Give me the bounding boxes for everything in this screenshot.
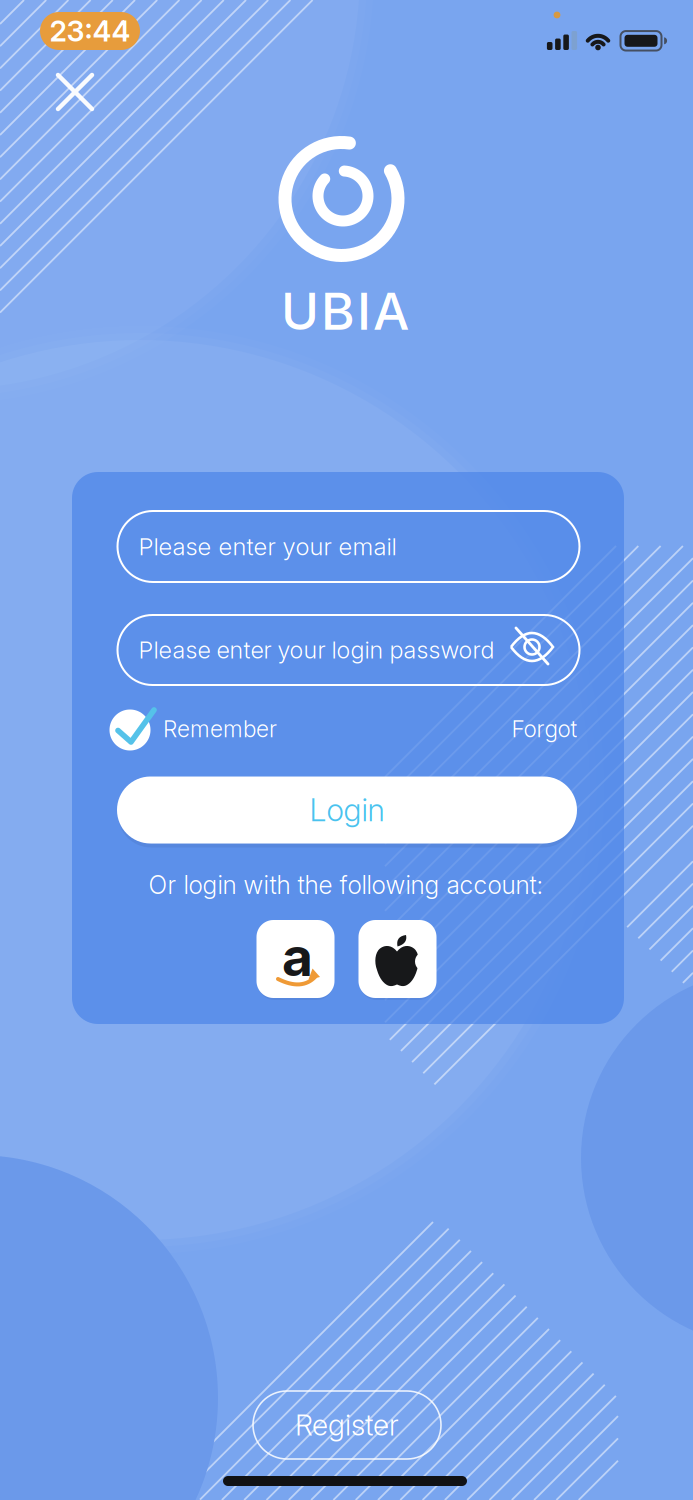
staticText: 23:44 [49, 14, 130, 48]
button[interactable]: Login [117, 776, 577, 843]
staticText: A [373, 280, 409, 342]
button[interactable]: Remember [109, 705, 277, 753]
button[interactable]: Please enter your login password [117, 615, 579, 685]
staticText: Or login with the following account: [148, 870, 543, 900]
button[interactable]: Please enter your email [117, 511, 579, 582]
button[interactable]: Sign in with Apple [358, 920, 436, 998]
staticText: B [321, 280, 355, 342]
staticText: Register [295, 1408, 399, 1442]
button[interactable]: Close [53, 70, 97, 114]
button[interactable]: Show password [509, 626, 555, 668]
button[interactable]: Register [253, 1391, 441, 1459]
staticText: U [281, 280, 319, 342]
staticText: Login [309, 791, 384, 828]
staticText: Please enter your email [138, 532, 396, 561]
staticText: Forgot [511, 715, 577, 743]
staticText: Please enter your login password [138, 636, 494, 664]
staticText: a [282, 924, 313, 989]
button[interactable]: Forgot [511, 715, 577, 743]
staticText: I [357, 280, 371, 342]
button[interactable]: Sign in with Amazon [256, 920, 334, 998]
button[interactable]: 23:44 [40, 12, 140, 50]
staticText: Remember [163, 715, 277, 743]
